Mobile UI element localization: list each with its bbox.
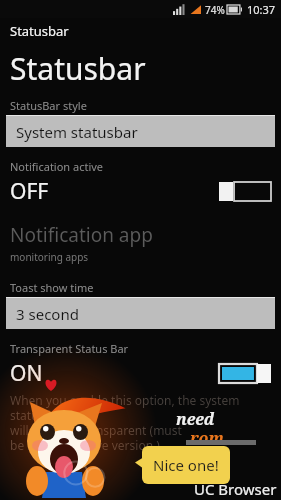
staticText: Toast show time xyxy=(10,280,94,295)
button[interactable]: System statusbar xyxy=(6,115,275,147)
staticText: OFF xyxy=(10,177,49,206)
staticText: Transparent Status Bar xyxy=(10,341,129,356)
staticText: Statusbar xyxy=(10,22,69,40)
staticText: UC Browser xyxy=(194,479,277,499)
staticText: need xyxy=(176,408,215,430)
button[interactable]: Statusbar xyxy=(0,18,281,44)
staticText: ON xyxy=(10,359,43,388)
staticText: 10:37 xyxy=(247,2,276,17)
staticText: Notification active xyxy=(10,159,104,174)
staticText: monitoring apps xyxy=(10,250,89,264)
staticText: rom xyxy=(190,427,224,449)
button[interactable]: Nice one! xyxy=(142,446,230,484)
staticText: 74% xyxy=(205,3,225,17)
staticText: Statusbar xyxy=(10,48,146,89)
button[interactable]: Notification app xyxy=(0,222,281,264)
button[interactable]: ON xyxy=(0,356,281,390)
staticText: Notification app xyxy=(10,222,153,248)
button[interactable]: Toggle on xyxy=(219,364,271,383)
staticText: Nice one! xyxy=(153,455,219,475)
staticText: System statusbar xyxy=(16,122,138,142)
button[interactable]: 3 second xyxy=(6,297,275,329)
button[interactable]: Toggle off xyxy=(219,182,271,201)
staticText: StatusBar style xyxy=(10,98,87,113)
staticText: When you enable this option, the system … xyxy=(10,392,273,453)
button[interactable]: OFF xyxy=(0,174,281,208)
staticText: 3 second xyxy=(16,304,79,324)
